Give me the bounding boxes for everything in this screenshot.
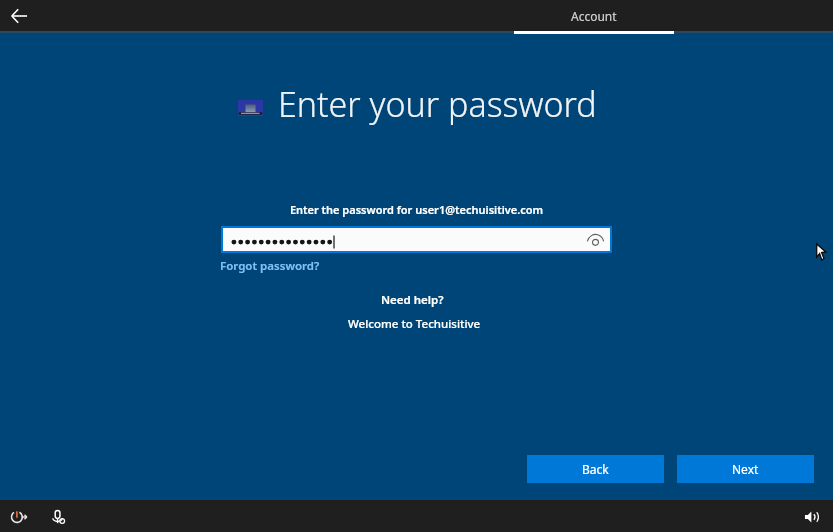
staticText: Welcome to Techuisitive [348, 316, 481, 332]
staticText: Back [582, 461, 609, 477]
staticText: Enter your password [278, 81, 597, 127]
button[interactable]: Account [514, 0, 674, 31]
staticText: Need help? [381, 292, 444, 308]
button[interactable]: Show password [223, 228, 610, 251]
button[interactable]: Back [527, 455, 664, 483]
button[interactable]: Back [0, 0, 40, 31]
button[interactable]: Forgot password? [220, 258, 320, 274]
staticText: Account [571, 8, 617, 24]
button[interactable]: Ease of access [42, 502, 74, 532]
button[interactable]: Need help? [381, 292, 444, 308]
button[interactable]: Power [3, 501, 35, 532]
staticText: Enter the password for user1@techuisitiv… [0, 202, 833, 217]
staticText: Next [732, 461, 759, 477]
button[interactable]: Volume [796, 501, 828, 532]
button[interactable]: Next [677, 455, 814, 483]
staticText: Forgot password? [220, 258, 320, 274]
button[interactable]: Show password [580, 228, 610, 251]
